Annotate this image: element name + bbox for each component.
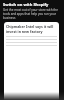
- staticText: Switch on with Shopify: [3, 2, 49, 7]
- staticText: Chipmaker Intel says it will invest in n…: [6, 24, 57, 34]
- staticText: Get the most out of your store with the …: [3, 8, 61, 20]
